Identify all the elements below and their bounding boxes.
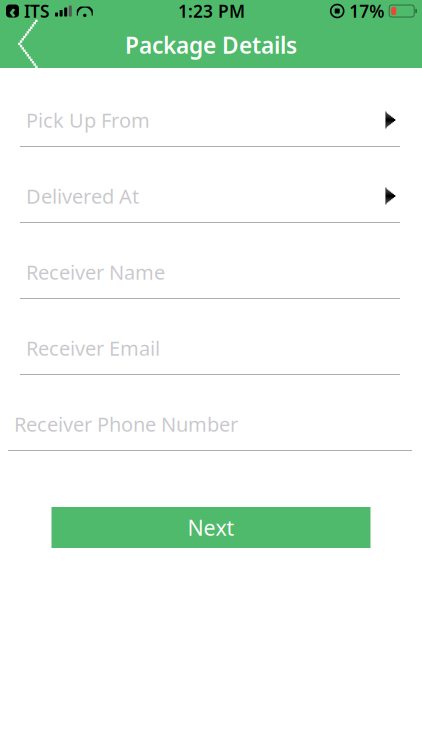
button[interactable]: Back — [7, 23, 51, 67]
staticText: 1:23 PM — [178, 0, 245, 22]
button[interactable]: Delivered At — [0, 170, 422, 246]
button[interactable]: Receiver Name — [0, 246, 422, 322]
staticText: Receiver Email — [26, 335, 160, 361]
staticText: Receiver Phone Number — [14, 411, 238, 437]
staticText: Receiver Name — [26, 259, 165, 285]
staticText: Pick Up From — [26, 107, 150, 133]
staticText: ‹ — [9, 0, 16, 22]
button[interactable]: Pick Up From — [0, 94, 422, 170]
staticText: 17% — [349, 0, 384, 22]
staticText: ITS — [24, 0, 50, 22]
staticText: Delivered At — [26, 183, 139, 209]
button[interactable]: Next — [51, 507, 370, 548]
staticText: Next — [187, 513, 234, 542]
button[interactable]: Receiver Email — [0, 322, 422, 398]
button[interactable]: Receiver Phone Number — [0, 398, 422, 474]
staticText: Package Details — [125, 30, 297, 60]
